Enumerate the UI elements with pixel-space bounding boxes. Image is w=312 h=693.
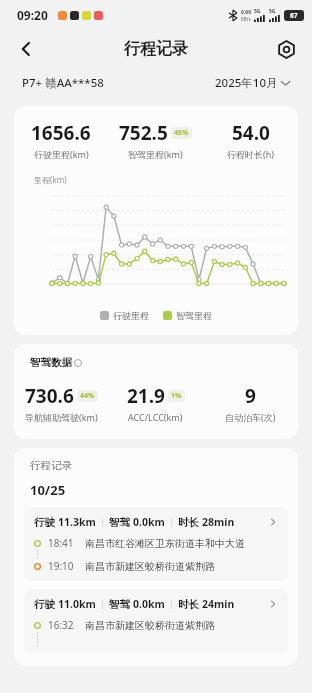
staticText: 44% — [80, 391, 95, 401]
staticText: 28min — [202, 515, 235, 529]
staticText: 5G — [269, 8, 276, 15]
staticText: 行驶 — [34, 515, 58, 529]
staticText: 时长 — [178, 597, 202, 611]
button[interactable]: 行驶 — [24, 507, 288, 581]
staticText: 南昌市新建区蛟桥街道紫荆路 — [85, 560, 215, 573]
staticText: 南昌市新建区蛟桥街道紫荆路 — [85, 619, 215, 632]
staticText: 自动泊车(次) — [225, 411, 276, 423]
staticText: 09:20 — [17, 7, 48, 23]
staticText: 10/25 — [30, 481, 66, 499]
staticText: 行驶 — [34, 597, 58, 611]
button[interactable]: Settings — [268, 31, 304, 67]
staticText: 1656.6 — [31, 120, 91, 146]
staticText: 智驾里程 — [176, 310, 212, 321]
staticText: 67 — [290, 11, 298, 20]
staticText: ACC/LCC(km) — [128, 411, 183, 423]
staticText: 16:32 — [48, 618, 74, 632]
staticText: 752.5 — [119, 120, 168, 146]
staticText: 730.6 — [25, 383, 74, 409]
staticText: KB/s — [241, 16, 251, 22]
staticText: 54.0 — [232, 120, 270, 146]
button[interactable]: 行驶 — [24, 589, 288, 654]
staticText: 11.3km — [58, 515, 96, 529]
staticText: 时长 — [178, 515, 202, 529]
staticText: 导航辅助驾驶(km) — [25, 411, 98, 423]
staticText: 行程时长(h) — [227, 148, 274, 160]
staticText: 19:10 — [48, 559, 74, 573]
staticText: 南昌市红谷滩区卫东街道丰和中大道 — [85, 537, 245, 550]
staticText: 18:41 — [48, 536, 74, 550]
staticText: 11.0km — [58, 597, 96, 611]
staticText: 2025年10月 — [215, 75, 278, 91]
staticText: 行驶里程(km) — [34, 148, 89, 160]
button[interactable]: Back — [8, 31, 44, 67]
staticText: 行程记录 — [124, 39, 188, 59]
staticText: 智驾里程(km) — [128, 148, 183, 160]
staticText: 21.9 — [127, 383, 165, 409]
staticText: 里程(km) — [34, 174, 67, 185]
staticText: 智驾数据 — [30, 356, 72, 369]
staticText: 智驾 — [109, 597, 133, 611]
staticText: 1% — [171, 391, 182, 401]
staticText: 0.60 — [241, 9, 251, 16]
staticText: 智驾 — [109, 515, 133, 529]
staticText: 9 — [245, 383, 256, 409]
button[interactable]: 2025年10月 — [215, 75, 290, 91]
staticText: 24min — [202, 597, 235, 611]
button[interactable]: Info — [74, 359, 82, 367]
staticText: 5G — [254, 8, 261, 15]
staticText: P7+ 赣AA***58 — [22, 75, 104, 91]
staticText: 行程记录 — [30, 459, 72, 472]
staticText: 0.0km — [133, 597, 165, 611]
staticText: 行驶里程 — [113, 310, 149, 321]
staticText: 0.0km — [133, 515, 165, 529]
staticText: 45% — [174, 128, 189, 138]
